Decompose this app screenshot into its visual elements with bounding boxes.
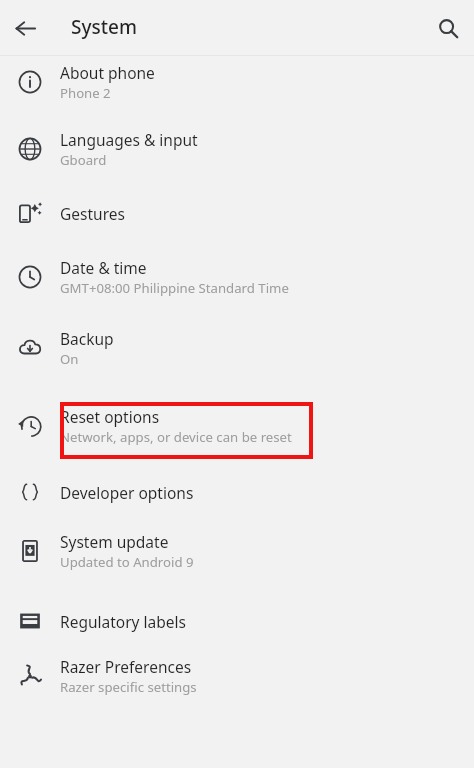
button[interactable]: System update: [0, 523, 474, 579]
button[interactable]: Developer options: [0, 470, 474, 514]
button[interactable]: Search: [429, 9, 467, 47]
button[interactable]: Date and time: [0, 249, 474, 305]
button[interactable]: Gestures: [0, 191, 474, 235]
staticText: On: [60, 350, 79, 368]
staticText: Reset options: [60, 406, 160, 427]
staticText: Backup: [60, 328, 114, 349]
staticText: GMT+08:00 Philippine Standard Time: [60, 279, 289, 297]
button[interactable]: Back: [6, 9, 44, 47]
button[interactable]: Razer Preferences: [0, 648, 474, 704]
button[interactable]: Backup: [0, 320, 474, 376]
staticText: Updated to Android 9: [60, 553, 194, 571]
staticText: Razer specific settings: [60, 678, 197, 696]
staticText: System update: [60, 531, 169, 552]
staticText: System: [71, 14, 137, 40]
staticText: Date & time: [60, 257, 147, 278]
button[interactable]: Languages and input: [0, 121, 474, 177]
button[interactable]: About phone: [0, 54, 474, 110]
staticText: Phone 2: [60, 84, 111, 102]
staticText: Gestures: [60, 203, 125, 224]
staticText: Regulatory labels: [60, 611, 186, 632]
button[interactable]: Regulatory labels: [0, 599, 474, 643]
staticText: Languages & input: [60, 129, 198, 150]
button[interactable]: Reset options: [0, 398, 474, 454]
staticText: Network, apps, or device can be reset: [60, 428, 292, 446]
staticText: About phone: [60, 62, 155, 83]
staticText: Gboard: [60, 151, 107, 169]
staticText: Developer options: [60, 482, 194, 503]
staticText: Razer Preferences: [60, 656, 192, 677]
